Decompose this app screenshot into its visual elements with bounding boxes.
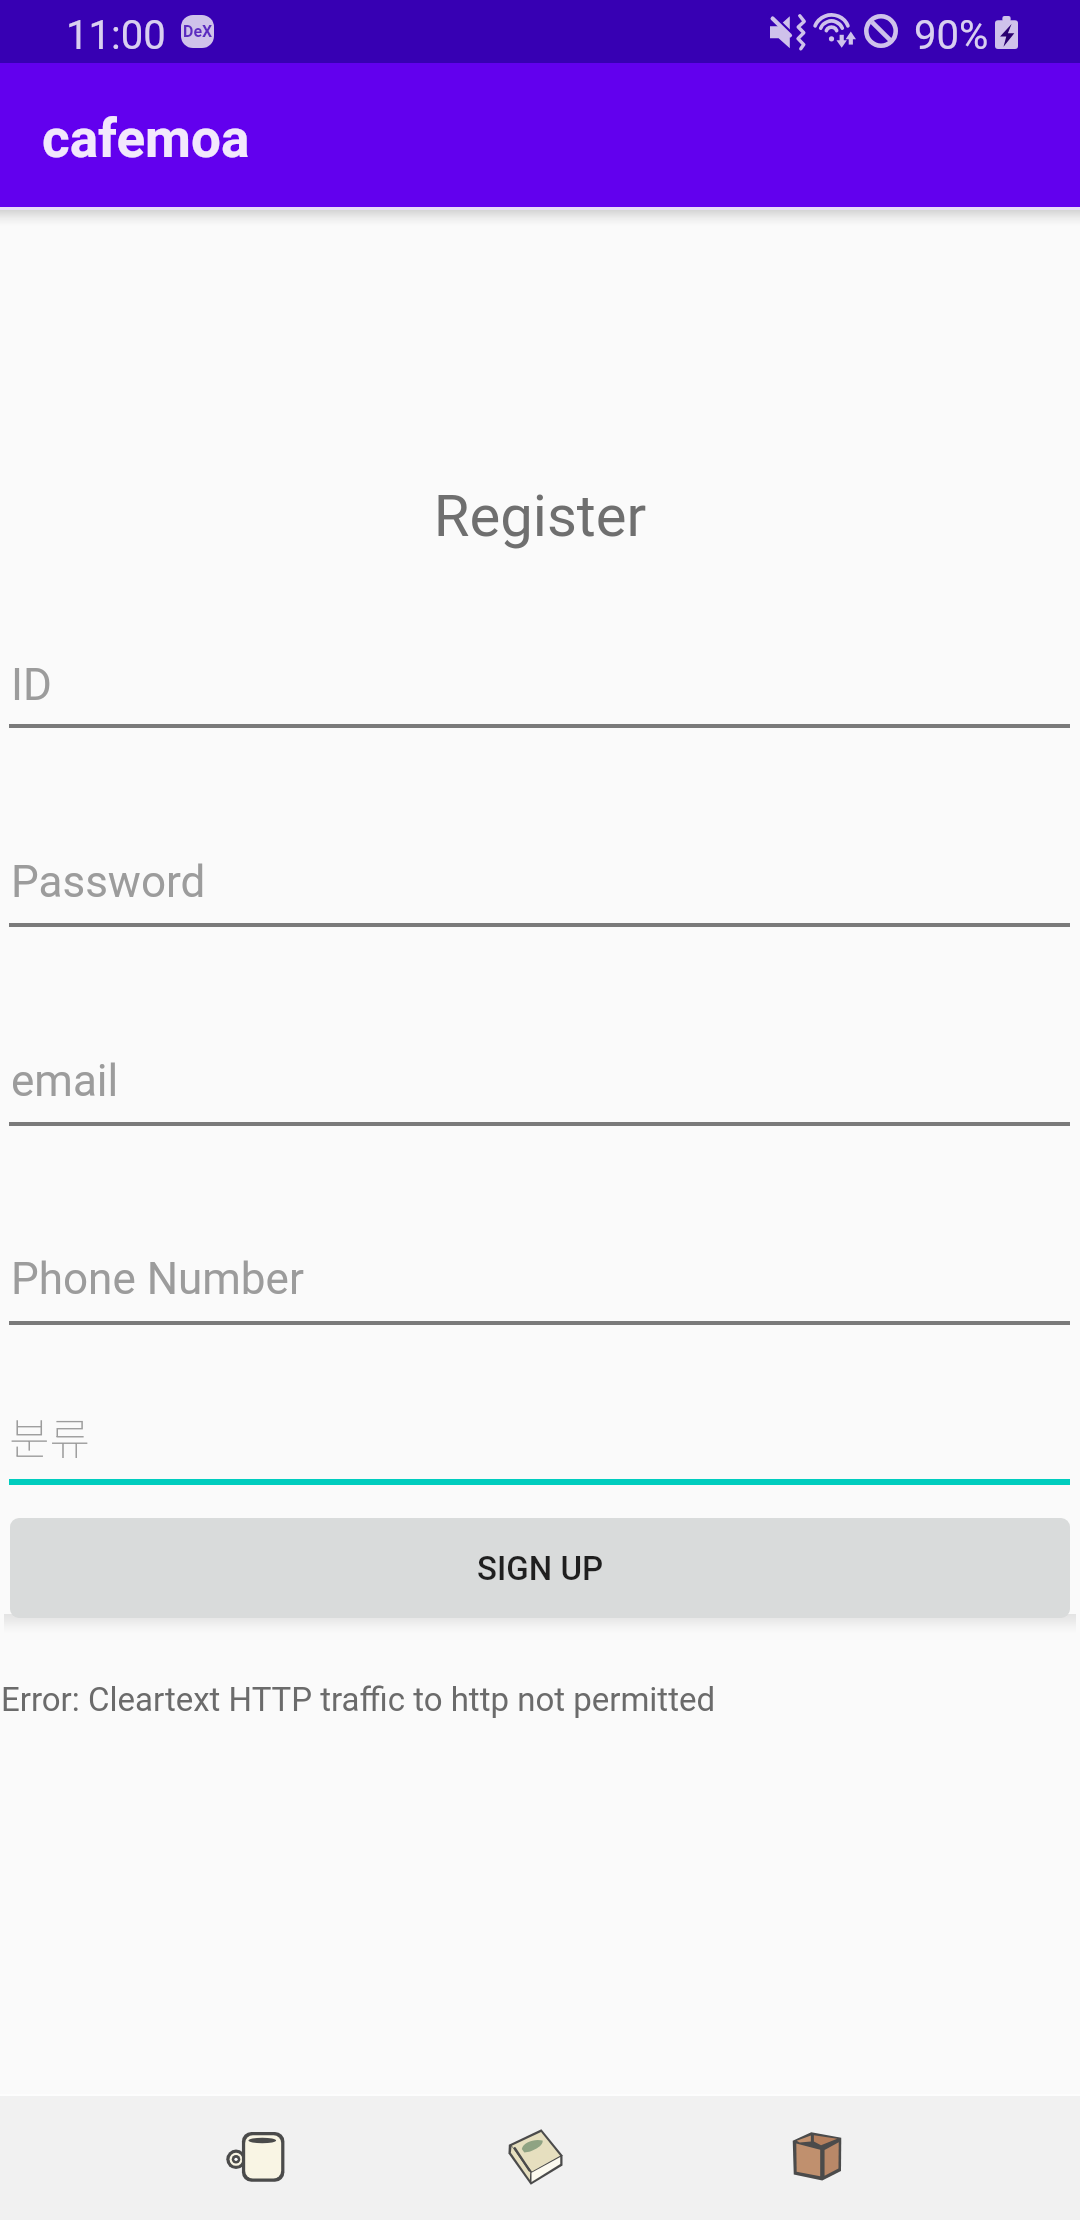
button[interactable]: email (0, 1024, 1080, 1126)
staticText: SIGN UP (477, 1549, 604, 1588)
staticText: Phone Number (11, 1253, 304, 1305)
staticText: 90% (914, 12, 989, 59)
button[interactable]: Storage (713, 2094, 923, 2220)
staticText: Register (0, 482, 1080, 550)
staticText: Error: Cleartext HTTP traffic to http no… (1, 1680, 716, 1719)
staticText: DeX (183, 22, 213, 41)
staticText: 11:00 (66, 12, 166, 59)
staticText: Password (11, 856, 206, 908)
button[interactable]: Books (430, 2094, 640, 2220)
button[interactable]: Password (0, 825, 1080, 927)
staticText: ID (11, 659, 52, 711)
button[interactable]: Cafes (150, 2094, 360, 2220)
staticText: cafemoa (42, 108, 250, 170)
button[interactable]: ID (0, 628, 1080, 728)
button[interactable]: SIGN UP (10, 1518, 1070, 1618)
staticText: 분류 (9, 1404, 90, 1468)
button[interactable]: Phone Number (0, 1222, 1080, 1325)
button[interactable]: 분류 (0, 1380, 1080, 1485)
staticText: email (11, 1055, 119, 1107)
